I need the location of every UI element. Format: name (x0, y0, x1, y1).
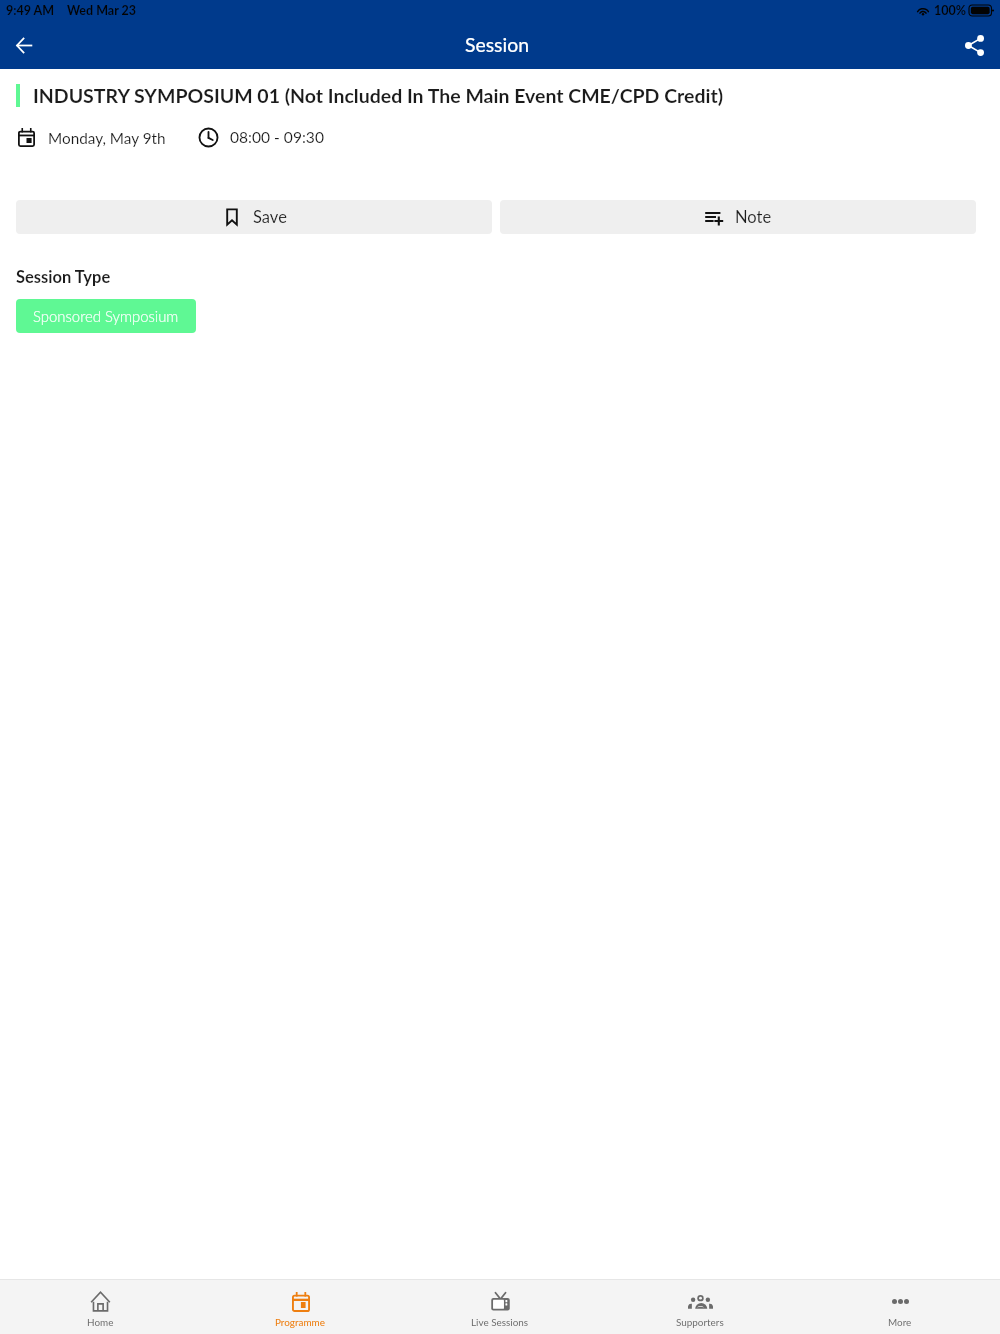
button[interactable]: Note (500, 200, 976, 234)
button[interactable]: Share (948, 21, 1000, 69)
staticText: Session (465, 33, 529, 56)
button[interactable]: Programme (200, 1280, 400, 1334)
staticText: Sponsored Symposium (33, 307, 179, 325)
staticText: Save (253, 207, 287, 227)
staticText: Live Sessions (471, 1316, 529, 1328)
staticText: More (888, 1316, 912, 1328)
button[interactable]: Back (0, 21, 48, 69)
staticText: Session Type (16, 267, 111, 287)
staticText: Programme (275, 1316, 325, 1328)
button[interactable]: More (800, 1280, 1000, 1334)
staticText: 9:49 AM (6, 3, 55, 18)
staticText: Wed Mar 23 (67, 3, 137, 18)
button[interactable]: Save (16, 200, 492, 234)
staticText: Note (735, 207, 772, 227)
staticText: INDUSTRY SYMPOSIUM 01 (Not Included In T… (33, 84, 724, 107)
button[interactable]: Sponsored Symposium (16, 299, 196, 333)
staticText: Home (87, 1316, 114, 1328)
button[interactable]: Home (0, 1280, 200, 1334)
staticText: 100% (934, 3, 966, 18)
button[interactable]: Live Sessions (400, 1280, 600, 1334)
staticText: Monday, May 9th (48, 129, 166, 147)
button[interactable]: Supporters (600, 1280, 800, 1334)
staticText: Supporters (676, 1316, 724, 1328)
staticText: 08:00 - 09:30 (230, 128, 324, 147)
